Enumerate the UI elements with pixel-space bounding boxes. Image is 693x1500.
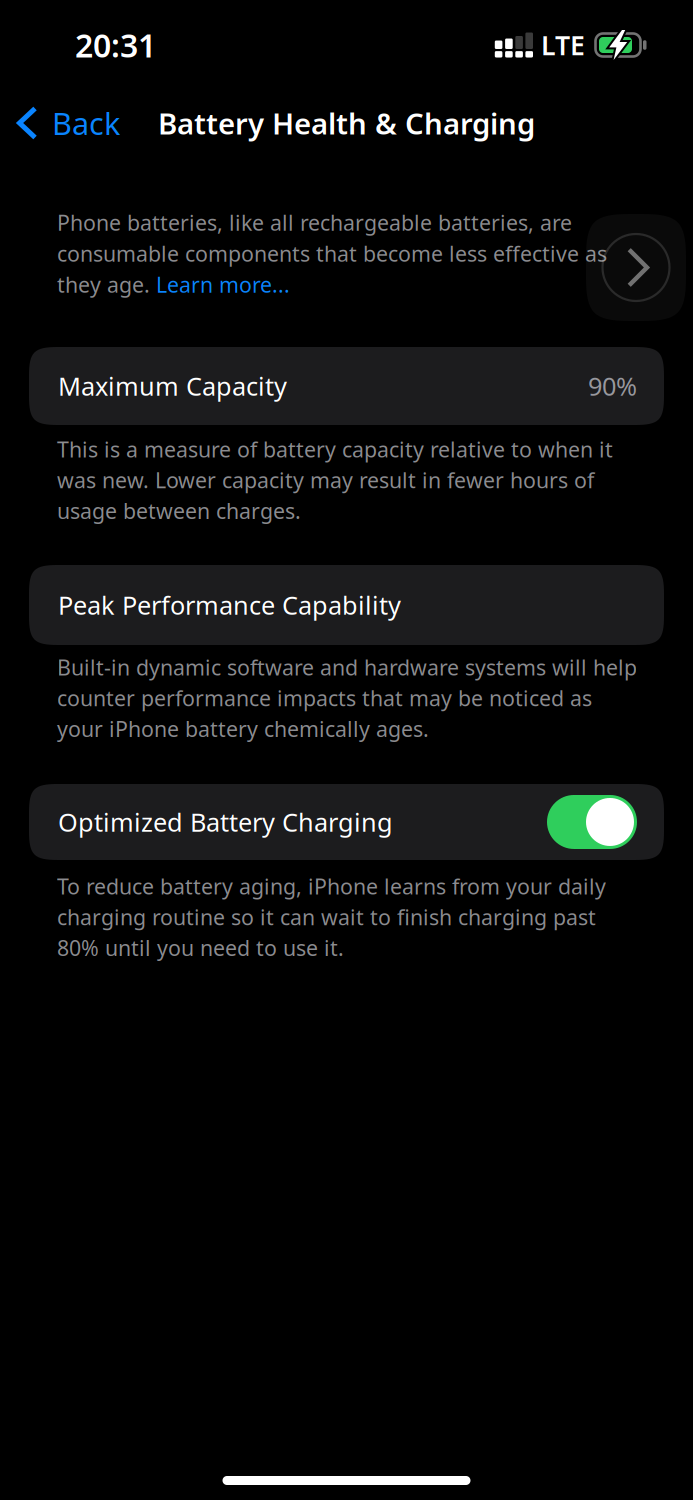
staticText: Peak Performance Capability [58, 588, 401, 622]
staticText: Phone batteries, like all rechargeable b… [57, 208, 572, 237]
staticText: Battery Health & Charging [158, 103, 535, 142]
button[interactable]: Next [586, 214, 686, 321]
staticText: 90% [588, 369, 637, 403]
staticText: Back [52, 103, 120, 143]
button[interactable]: Optimized Battery Charging [29, 784, 664, 860]
button[interactable]: Peak Performance Capability [29, 565, 664, 645]
button[interactable]: Learn more... [156, 270, 290, 299]
staticText: Optimized Battery Charging [58, 805, 393, 839]
staticText: LTE [541, 27, 585, 63]
button[interactable]: Maximum Capacity [29, 347, 664, 425]
staticText: 20:31 [75, 24, 156, 66]
staticText: To reduce battery aging, iPhone learns f… [57, 872, 606, 962]
staticText: This is a measure of battery capacity re… [57, 435, 613, 525]
staticText: Built-in dynamic software and hardware s… [57, 653, 637, 743]
staticText: they age. [57, 270, 156, 299]
button[interactable]: Back [0, 93, 136, 153]
staticText: consumable components that become less e… [57, 239, 607, 268]
staticText: Learn more... [156, 270, 290, 299]
staticText: Maximum Capacity [58, 369, 287, 403]
